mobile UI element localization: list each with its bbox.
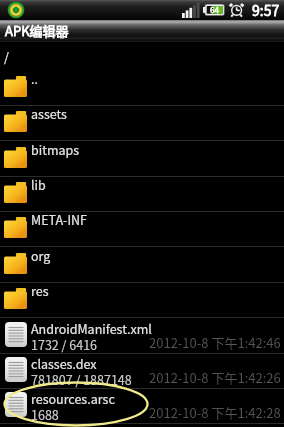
staticText: 1732 / 6416 [31, 335, 98, 353]
staticText: classes.dex [31, 354, 97, 372]
button[interactable]: assets [0, 106, 284, 141]
other: App notification [7, 1, 25, 19]
staticText: .. [31, 69, 38, 87]
staticText: 64 [210, 4, 219, 16]
staticText: APK编辑器 [5, 21, 69, 40]
staticText: resources.arsc [31, 389, 115, 407]
staticText: lib [31, 175, 46, 193]
staticText: / [4, 47, 9, 65]
staticText: 781807 / 1887148 [31, 370, 132, 388]
button[interactable]: resources.arsc [0, 389, 284, 424]
staticText: bitmaps [31, 140, 80, 158]
button[interactable]: bitmaps [0, 142, 284, 177]
button[interactable]: org [0, 248, 284, 283]
button[interactable]: APK编辑器 [0, 20, 284, 41]
staticText: assets [31, 104, 67, 122]
staticText: 2012-10-8 下午1:42:26 [149, 368, 281, 387]
staticText: 9:57 [252, 0, 280, 20]
staticText: org [31, 246, 51, 264]
staticText: 1688 [31, 405, 59, 423]
button[interactable]: lib [0, 177, 284, 212]
button[interactable]: AndroidManifest.xml [0, 319, 284, 354]
button[interactable]: META-INF [0, 212, 284, 247]
button[interactable]: classes.dex [0, 354, 284, 389]
staticText: 2012-10-8 下午1:42:28 [149, 403, 281, 422]
button[interactable]: .. [0, 71, 284, 106]
staticText: res [31, 281, 49, 299]
staticText: 2012-10-8 下午1:42:46 [149, 333, 281, 352]
staticText: AndroidManifest.xml [31, 319, 152, 337]
staticText: META-INF [31, 210, 87, 228]
button[interactable]: res [0, 283, 284, 318]
